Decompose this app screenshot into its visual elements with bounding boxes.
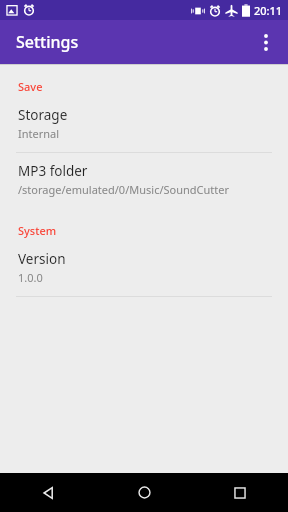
staticText: /storage/emulated/0/Music/SoundCutter — [18, 182, 230, 197]
staticText: 20:11 — [254, 3, 283, 18]
button[interactable]: Back — [0, 473, 96, 512]
button[interactable]: Recent apps — [192, 473, 288, 512]
button[interactable]: MP3 folder — [0, 153, 288, 208]
button[interactable]: Storage — [0, 97, 288, 152]
button[interactable]: Version — [0, 241, 288, 296]
button[interactable]: Home — [96, 473, 192, 512]
staticText: Version — [18, 250, 66, 268]
staticText: Settings — [16, 31, 79, 53]
staticText: 1.0.0 — [18, 270, 43, 285]
staticText: MP3 folder — [18, 162, 88, 180]
staticText: Internal — [18, 126, 60, 141]
staticText: Save — [18, 79, 43, 94]
staticText: System — [18, 223, 57, 238]
button[interactable]: More options — [244, 20, 288, 64]
staticText: Storage — [18, 106, 68, 124]
